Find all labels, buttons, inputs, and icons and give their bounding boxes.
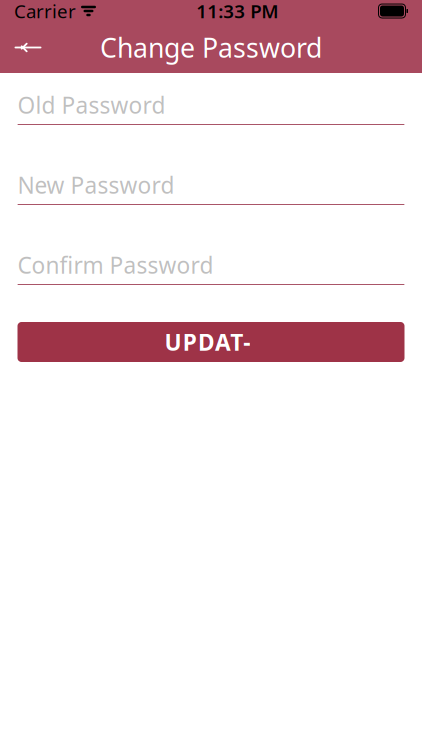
- staticText: UPDATE: [164, 327, 257, 357]
- button[interactable]: UPDATE: [17, 322, 404, 362]
- staticText: Confirm Password: [17, 250, 213, 280]
- staticText: New Password: [17, 170, 174, 200]
- staticText: Old Password: [17, 90, 165, 120]
- staticText: Carrier: [14, 0, 76, 23]
- button[interactable]: Back: [0, 22, 56, 73]
- staticText: 11:33 PM: [196, 0, 278, 23]
- staticText: Change Password: [100, 30, 322, 65]
